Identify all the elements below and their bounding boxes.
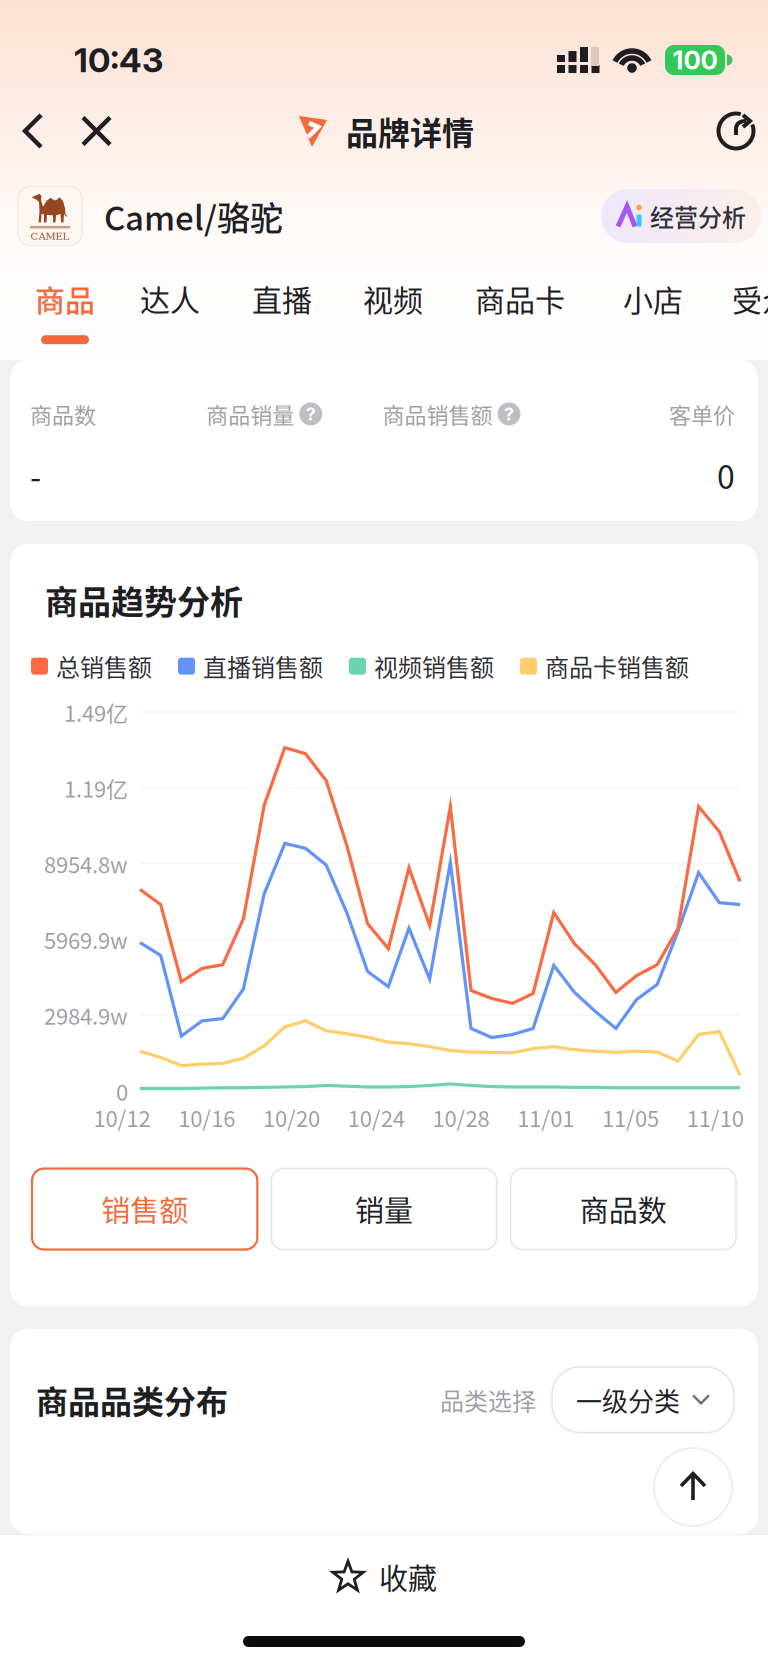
- staticText: 受众: [732, 277, 768, 320]
- staticText: 经营分析: [650, 199, 746, 233]
- staticText: -: [30, 452, 41, 498]
- staticText: 小店: [623, 277, 683, 320]
- staticText: 商品卡: [475, 277, 565, 320]
- button[interactable]: Refresh: [704, 95, 768, 167]
- staticText: 11/01: [517, 1101, 574, 1133]
- button[interactable]: Close: [55, 95, 128, 166]
- staticText: 1.49亿: [64, 696, 128, 728]
- staticText: 客单价: [669, 398, 735, 430]
- staticText: 商品品类分布: [36, 1377, 228, 1423]
- staticText: 10:43: [74, 39, 163, 80]
- staticText: 一级分类: [576, 1381, 680, 1419]
- button[interactable]: 直播: [252, 229, 312, 344]
- staticText: 8954.8w: [44, 848, 128, 880]
- button[interactable]: Scroll to top: [654, 1448, 732, 1526]
- staticText: 5969.9w: [44, 923, 128, 955]
- staticText: 销售额: [101, 1188, 188, 1230]
- staticText: 10/24: [348, 1101, 405, 1133]
- button[interactable]: 销量: [271, 1168, 497, 1249]
- staticText: 商品销售额: [382, 398, 492, 430]
- staticText: 商品趋势分析: [45, 576, 243, 624]
- button[interactable]: 商品卡: [475, 229, 565, 344]
- staticText: 11/05: [602, 1101, 659, 1133]
- staticText: 商品数: [30, 398, 96, 430]
- button[interactable]: 一级分类: [552, 1367, 734, 1433]
- button[interactable]: 销售额: [32, 1168, 257, 1249]
- staticText: 10/28: [432, 1101, 489, 1133]
- staticText: 商品销量: [206, 398, 294, 430]
- staticText: 品牌详情: [346, 108, 474, 154]
- staticText: 10/12: [93, 1101, 150, 1133]
- staticText: ?: [504, 403, 514, 425]
- button[interactable]: 受众: [732, 229, 768, 344]
- button[interactable]: 经营分析: [601, 189, 761, 243]
- staticText: ?: [306, 403, 316, 425]
- button[interactable]: 小店: [623, 229, 683, 344]
- button[interactable]: 商品: [35, 229, 95, 344]
- staticText: 直播: [252, 277, 312, 320]
- button[interactable]: 商品数: [511, 1168, 736, 1249]
- staticText: 2984.9w: [44, 999, 128, 1031]
- staticText: 10/20: [263, 1101, 320, 1133]
- staticText: Camel/骆驼: [104, 192, 283, 240]
- staticText: 视频销售额: [374, 649, 494, 684]
- staticText: 0: [717, 452, 735, 498]
- staticText: 收藏: [379, 1556, 437, 1598]
- staticText: 达人: [140, 277, 200, 320]
- button[interactable]: 收藏: [0, 1535, 768, 1619]
- staticText: CAMEL: [30, 230, 69, 242]
- staticText: 直播销售额: [203, 649, 323, 684]
- staticText: 100: [672, 44, 717, 76]
- button[interactable]: 视频: [363, 229, 423, 344]
- staticText: 总销售额: [56, 649, 152, 684]
- button[interactable]: 达人: [140, 229, 200, 344]
- button[interactable]: Back: [11, 97, 55, 165]
- staticText: 销量: [355, 1188, 413, 1230]
- staticText: 10/16: [178, 1101, 235, 1133]
- staticText: 商品: [35, 277, 95, 320]
- staticText: 品类选择: [440, 1382, 536, 1417]
- staticText: 商品数: [580, 1188, 667, 1230]
- staticText: 1.19亿: [64, 772, 128, 804]
- staticText: 11/10: [687, 1101, 744, 1133]
- staticText: 视频: [363, 277, 423, 320]
- staticText: 0: [116, 1075, 128, 1107]
- staticText: 商品卡销售额: [545, 649, 689, 684]
